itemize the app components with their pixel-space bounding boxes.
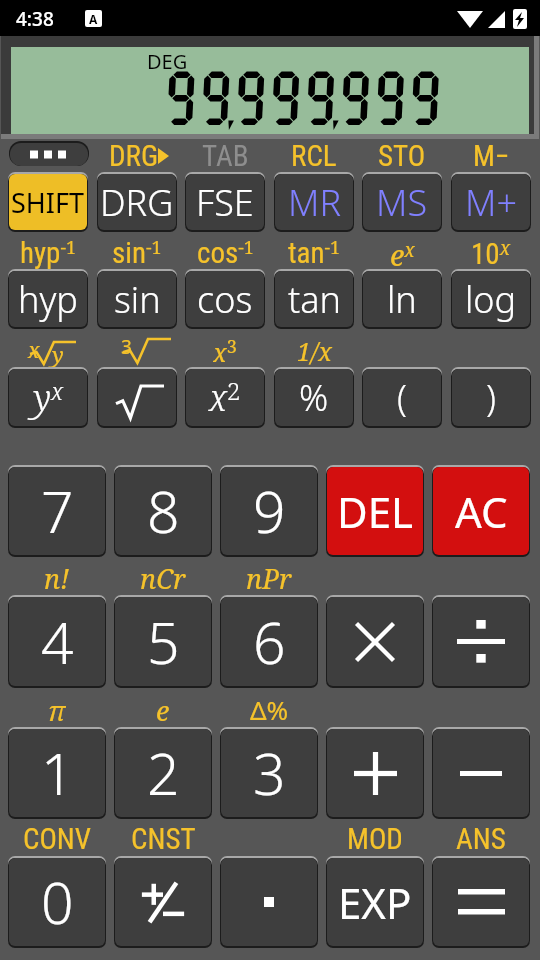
staticText: FSE bbox=[196, 178, 254, 227]
button[interactable]: 8 bbox=[114, 466, 212, 556]
button[interactable]: ( bbox=[362, 368, 442, 427]
staticText: e bbox=[156, 692, 170, 726]
staticText: π bbox=[48, 692, 66, 726]
staticText: cos bbox=[197, 275, 253, 324]
staticText: TAB bbox=[202, 139, 249, 173]
staticText: DEG bbox=[147, 48, 188, 75]
staticText: 2 bbox=[147, 734, 180, 812]
staticText: y bbox=[52, 339, 64, 369]
button[interactable]: tan bbox=[274, 270, 354, 328]
staticText: DRG bbox=[100, 178, 174, 227]
staticText: nCr bbox=[140, 560, 186, 594]
staticText: 10x bbox=[471, 235, 511, 269]
staticText: yx bbox=[33, 373, 64, 422]
button[interactable]: plus bbox=[326, 728, 424, 818]
button[interactable]: MS bbox=[362, 173, 442, 231]
staticText: 4 bbox=[41, 603, 74, 681]
button[interactable]: cos bbox=[185, 270, 265, 328]
button[interactable]: % bbox=[274, 368, 354, 427]
staticText: sin-1 bbox=[112, 235, 162, 269]
staticText: ) bbox=[486, 373, 496, 422]
staticText: 4:38 bbox=[16, 6, 54, 32]
staticText: M+ bbox=[465, 178, 517, 227]
button[interactable]: 0 bbox=[8, 857, 106, 947]
button[interactable]: 7 bbox=[8, 466, 106, 556]
button[interactable]: decimal point bbox=[220, 857, 318, 947]
staticText: CNST bbox=[131, 822, 196, 856]
staticText: RCL bbox=[291, 139, 337, 173]
button[interactable]: 5 bbox=[114, 596, 212, 687]
staticText: tan bbox=[288, 275, 341, 324]
button[interactable] bbox=[97, 368, 177, 427]
button[interactable]: ) bbox=[451, 368, 531, 427]
staticText: % bbox=[299, 373, 329, 422]
button[interactable]: AC bbox=[432, 466, 530, 556]
staticText: AC bbox=[455, 483, 508, 540]
staticText: sin bbox=[114, 275, 161, 324]
button[interactable]: equals bbox=[432, 857, 530, 947]
staticText: x2 bbox=[209, 373, 241, 422]
staticText: ( bbox=[397, 373, 407, 422]
staticText: nPr bbox=[246, 560, 292, 594]
staticText: hyp bbox=[18, 275, 78, 324]
button[interactable]: M+ bbox=[451, 173, 531, 231]
button[interactable]: 6 bbox=[220, 596, 318, 687]
staticText: 8 bbox=[147, 472, 180, 550]
button[interactable]: 9 bbox=[220, 466, 318, 556]
button[interactable]: DEL bbox=[326, 466, 424, 556]
staticText: STO bbox=[378, 139, 426, 173]
button[interactable]: hyp bbox=[8, 270, 88, 328]
button[interactable]: minus bbox=[432, 728, 530, 818]
button[interactable]: MR bbox=[274, 173, 354, 231]
button[interactable]: EXP bbox=[326, 857, 424, 947]
button[interactable]: SHIFT bbox=[8, 173, 88, 231]
staticText: tan-1 bbox=[288, 235, 341, 269]
button[interactable]: plus minus bbox=[114, 857, 212, 947]
staticText: CONV bbox=[23, 822, 92, 856]
button[interactable]: x2 bbox=[185, 368, 265, 427]
staticText: MR bbox=[288, 178, 341, 227]
button[interactable]: 2 bbox=[114, 728, 212, 818]
staticText: log bbox=[465, 275, 517, 324]
staticText: 1/x bbox=[297, 334, 332, 368]
staticText: 3 bbox=[121, 334, 132, 360]
button[interactable]: sin bbox=[97, 270, 177, 328]
staticText: A bbox=[89, 11, 98, 27]
button[interactable]: log bbox=[451, 270, 531, 328]
button[interactable]: yx bbox=[8, 368, 88, 427]
staticText: Δ% bbox=[250, 692, 289, 726]
staticText: hyp-1 bbox=[20, 235, 77, 269]
staticText: 0 bbox=[41, 863, 74, 941]
staticText: DRG bbox=[109, 139, 159, 173]
button[interactable]: 4 bbox=[8, 596, 106, 687]
staticText: cos-1 bbox=[197, 235, 254, 269]
button[interactable]: DRG bbox=[97, 173, 177, 231]
staticText: x3 bbox=[213, 334, 237, 368]
staticText: ANS bbox=[456, 822, 506, 856]
staticText: n! bbox=[44, 560, 70, 594]
staticText: 1 bbox=[41, 734, 74, 812]
button[interactable]: Menu bbox=[9, 141, 89, 166]
staticText: SHIFT bbox=[11, 184, 85, 221]
button[interactable]: 1 bbox=[8, 728, 106, 818]
staticText: 5 bbox=[147, 603, 180, 681]
button[interactable]: divide bbox=[432, 596, 530, 687]
button[interactable]: 3 bbox=[220, 728, 318, 818]
staticText: 7 bbox=[41, 472, 74, 550]
staticText: 3 bbox=[253, 734, 286, 812]
staticText: EXP bbox=[338, 874, 412, 931]
staticText: 6 bbox=[253, 603, 286, 681]
staticText: MOD bbox=[347, 822, 403, 856]
staticText: ex bbox=[390, 235, 415, 269]
staticText: x bbox=[28, 336, 40, 365]
staticText: DEL bbox=[337, 483, 414, 540]
button[interactable]: FSE bbox=[185, 173, 265, 231]
button[interactable]: multiply bbox=[326, 596, 424, 687]
staticText: MS bbox=[376, 178, 428, 227]
staticText: ln bbox=[387, 275, 417, 324]
staticText: 9 bbox=[253, 472, 286, 550]
button[interactable]: ln bbox=[362, 270, 442, 328]
staticText: M− bbox=[473, 139, 510, 173]
